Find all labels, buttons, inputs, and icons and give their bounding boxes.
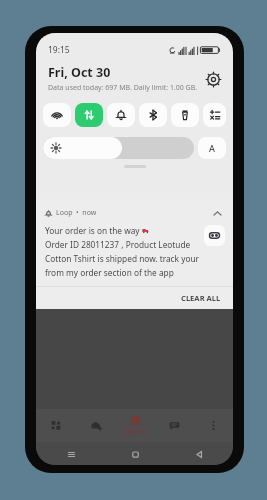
button[interactable]: Categories	[36, 409, 76, 442]
button[interactable]: Bluetooth	[139, 103, 167, 127]
staticText: Loop • now	[56, 208, 97, 218]
button[interactable]: Chat	[155, 409, 194, 442]
button[interactable]: Store	[76, 409, 116, 442]
button[interactable]: Wi-Fi	[43, 103, 71, 127]
staticText: from my order section of the app	[45, 267, 174, 278]
button[interactable]: Loop app icon	[204, 225, 225, 246]
staticText: Orders	[124, 427, 147, 436]
button[interactable]: CLEAR ALL	[178, 291, 224, 305]
staticText: Data used today: 697 MB. Daily limit: 1.…	[48, 83, 198, 93]
staticText: A	[209, 142, 215, 154]
button[interactable]: Home	[125, 444, 145, 464]
button[interactable]: Back	[189, 444, 209, 464]
button[interactable]: Settings	[203, 69, 223, 89]
button[interactable]: Recents	[61, 444, 81, 464]
button[interactable]: Calculator	[203, 103, 226, 127]
button[interactable]: Orders	[116, 409, 155, 442]
staticText: Cotton Tshirt is shipped now. track your…	[45, 253, 199, 264]
staticText: CLEAR ALL	[181, 293, 221, 303]
staticText: Fri, Oct 30	[48, 64, 111, 81]
button[interactable]: Notifications	[107, 103, 135, 127]
staticText: 19:15	[48, 44, 70, 56]
button[interactable]: Collapse	[210, 206, 224, 220]
button[interactable]: Mobile data	[75, 103, 103, 127]
button[interactable]: Auto brightness	[198, 137, 226, 159]
staticText: Order ID 28011237 , Product Leotude Men'…	[45, 239, 199, 250]
button[interactable]: Flashlight	[171, 103, 199, 127]
staticText: Your order is on the way	[45, 225, 142, 236]
button[interactable]: Brightness	[43, 137, 194, 159]
